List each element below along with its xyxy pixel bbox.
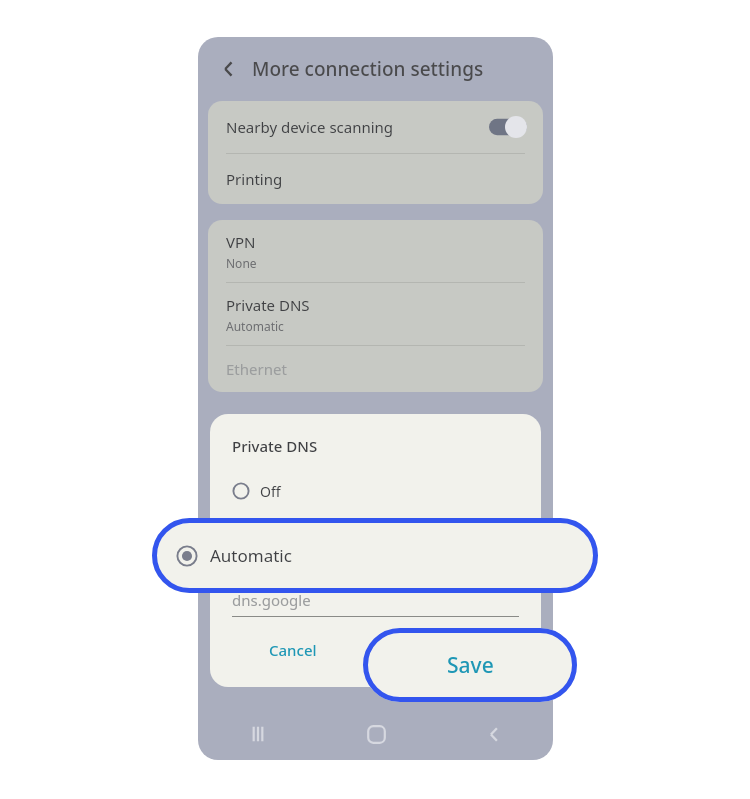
staticText: Save (447, 651, 494, 680)
button[interactable]: Automatic (152, 518, 598, 593)
staticText: Automatic (260, 520, 328, 539)
staticText: VPN (226, 232, 256, 252)
button[interactable]: Back (435, 708, 553, 760)
button[interactable]: Nearby device scanning toggle (489, 116, 527, 138)
staticText: Private DNS (226, 295, 310, 315)
button[interactable]: Back (216, 56, 242, 82)
staticText: Nearby device scanning (226, 117, 394, 137)
button[interactable]: Automatic (210, 510, 541, 548)
button[interactable]: Nearby device scanning (208, 101, 543, 153)
button[interactable]: Recents (198, 708, 317, 760)
button[interactable]: Printing (208, 154, 543, 204)
staticText: Private DNS (232, 436, 318, 456)
button[interactable]: VPN (208, 220, 543, 282)
button[interactable]: Home (317, 708, 435, 760)
staticText: Cancel (269, 640, 317, 660)
staticText: dns.google (232, 590, 311, 610)
staticText: Automatic (226, 318, 284, 334)
button[interactable]: Off (210, 472, 541, 510)
button[interactable]: Save (375, 627, 541, 673)
button[interactable]: Save (363, 628, 577, 702)
staticText: Off (260, 482, 281, 501)
staticText: Printing (226, 169, 283, 189)
staticText: None (226, 255, 257, 271)
button[interactable]: Private DNS provider hostname (210, 548, 541, 586)
staticText: Ethernet (226, 359, 287, 379)
staticText: More connection settings (252, 56, 484, 82)
staticText: Save (441, 640, 475, 660)
staticText: Automatic (210, 544, 292, 567)
button[interactable]: Private DNS (208, 283, 543, 345)
staticText: Private DNS provider hostname (260, 558, 467, 577)
button[interactable]: Cancel (210, 627, 375, 673)
button[interactable]: Ethernet (208, 346, 543, 392)
